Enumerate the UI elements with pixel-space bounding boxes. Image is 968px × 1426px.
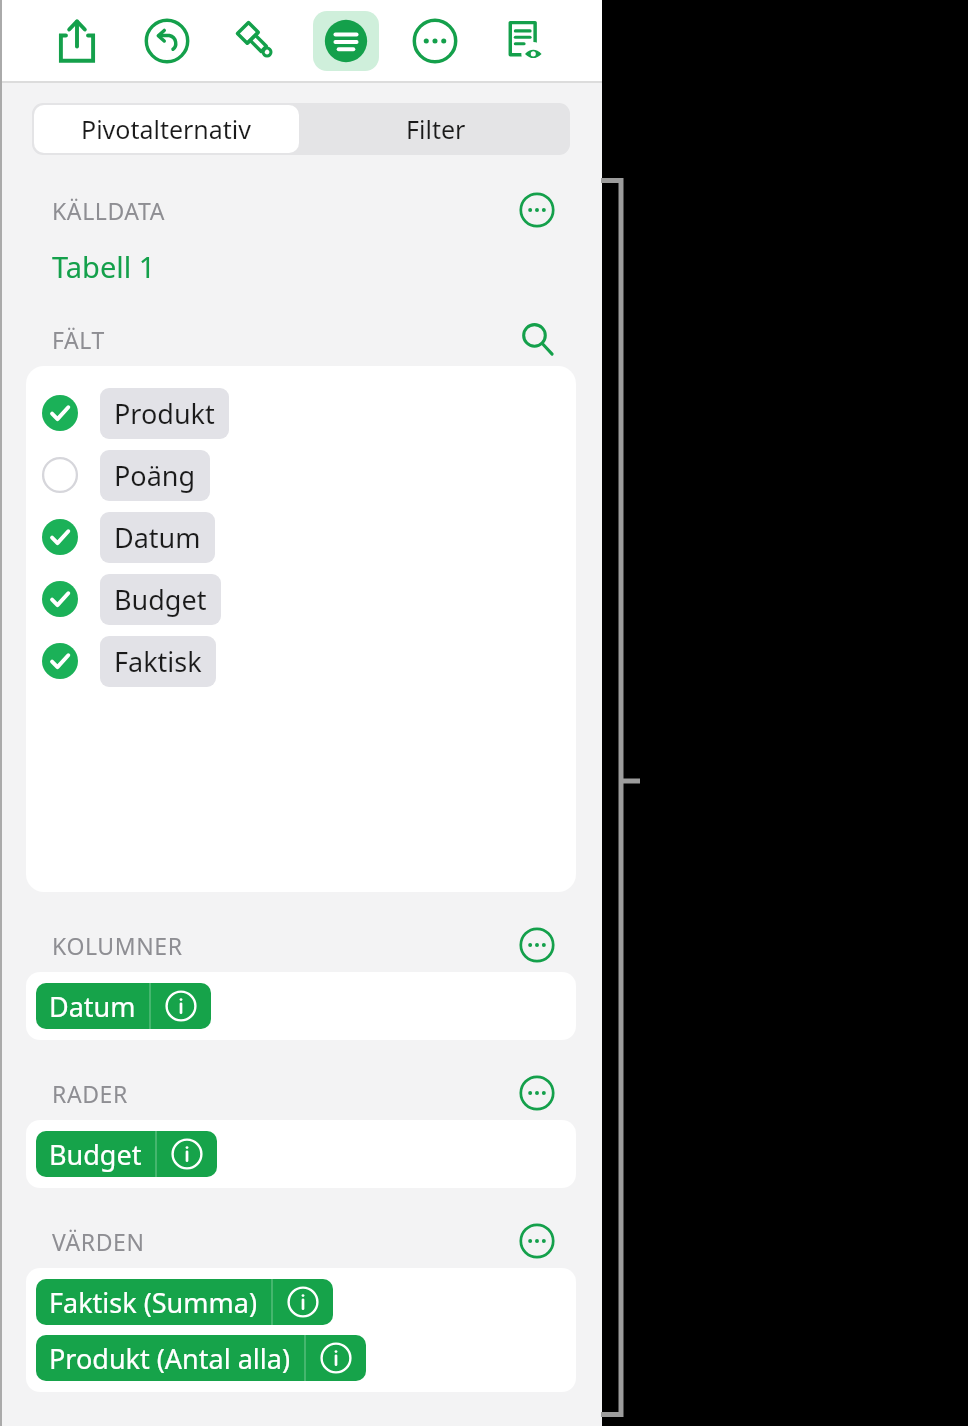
button[interactable]: Format: [313, 11, 379, 71]
staticText: Datum: [114, 519, 201, 556]
button[interactable]: Undo: [134, 11, 200, 71]
staticText: Faktisk (Summa): [49, 1284, 258, 1321]
button[interactable]: More options: [514, 1072, 560, 1114]
staticText: Produkt (Antal alla): [49, 1340, 291, 1377]
staticText: Pivotalternativ: [81, 112, 252, 146]
button[interactable]: Faktisk: [26, 630, 576, 692]
button[interactable]: More options: [514, 924, 560, 966]
staticText: Budget: [114, 581, 207, 618]
button[interactable]: Budget: [36, 1131, 217, 1177]
staticText: Produkt: [114, 395, 215, 432]
staticText: Poäng: [114, 457, 196, 494]
staticText: Datum: [49, 988, 136, 1025]
button[interactable]: Produkt: [26, 382, 576, 444]
staticText: KÄLLDATA: [52, 195, 166, 226]
button[interactable]: Format brush: [223, 11, 289, 71]
button[interactable]: Budget: [26, 568, 576, 630]
staticText: VÄRDEN: [52, 1226, 145, 1257]
staticText: Filter: [406, 112, 466, 146]
button[interactable]: Faktisk (Summa): [36, 1279, 333, 1325]
button[interactable]: More options: [514, 189, 560, 231]
button[interactable]: Info: [157, 1131, 217, 1177]
button[interactable]: Info: [273, 1279, 333, 1325]
button[interactable]: Datum: [36, 983, 211, 1029]
staticText: RADER: [52, 1078, 128, 1109]
button[interactable]: Pivotalternativ: [34, 105, 299, 153]
button[interactable]: Tabell 1: [52, 247, 156, 286]
staticText: Faktisk: [114, 643, 202, 680]
staticText: KOLUMNER: [52, 930, 183, 961]
staticText: FÄLT: [52, 324, 105, 355]
button[interactable]: Poäng: [26, 444, 576, 506]
button[interactable]: Share: [44, 11, 110, 71]
button[interactable]: Info: [151, 983, 211, 1029]
button[interactable]: Produkt (Antal alla): [36, 1335, 366, 1381]
button[interactable]: Info: [306, 1335, 366, 1381]
staticText: Budget: [49, 1136, 142, 1173]
button[interactable]: Datum: [26, 506, 576, 568]
button[interactable]: Document preview: [492, 11, 558, 71]
button[interactable]: More options: [514, 1220, 560, 1262]
button[interactable]: Filter: [301, 103, 570, 155]
button[interactable]: Search: [514, 318, 560, 360]
button[interactable]: More: [402, 11, 468, 71]
